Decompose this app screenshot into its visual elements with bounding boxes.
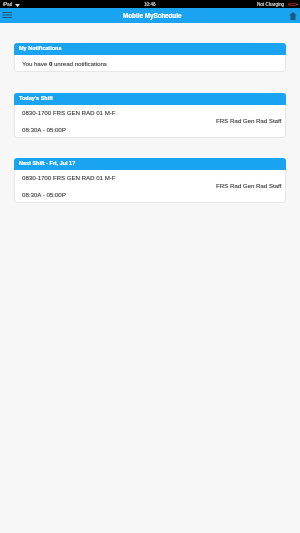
staticText: Mobile MySchedule: [123, 12, 182, 19]
staticText: FRS Rad Gen Rad Staff: [216, 117, 282, 124]
staticText: 08:30A - 05:00P: [22, 126, 66, 133]
staticText: 08:30A - 05:00P: [22, 191, 66, 198]
staticText: You have 0 unread notifications: [22, 60, 107, 67]
staticText: 10:46: [144, 2, 156, 7]
staticText: My Notifications: [19, 45, 62, 51]
staticText: iPad: [3, 2, 13, 7]
staticText: Today's Shift: [19, 95, 53, 101]
button[interactable]: Today's Shift: [14, 93, 286, 138]
button[interactable]: Next Shift - Fri, Jul 17: [14, 158, 286, 203]
button[interactable]: Open navigation menu: [0, 8, 14, 23]
staticText: 0830-1700 FRS GEN RAD 01 M-F: [22, 174, 116, 181]
button[interactable]: My Notifications: [14, 43, 286, 72]
staticText: FRS Rad Gen Rad Staff: [216, 182, 282, 189]
staticText: Not Charging: [257, 2, 285, 7]
staticText: Next Shift - Fri, Jul 17: [19, 160, 76, 166]
staticText: 0830-1700 FRS GEN RAD 01 M-F: [22, 109, 116, 116]
button[interactable]: Home: [285, 8, 300, 23]
